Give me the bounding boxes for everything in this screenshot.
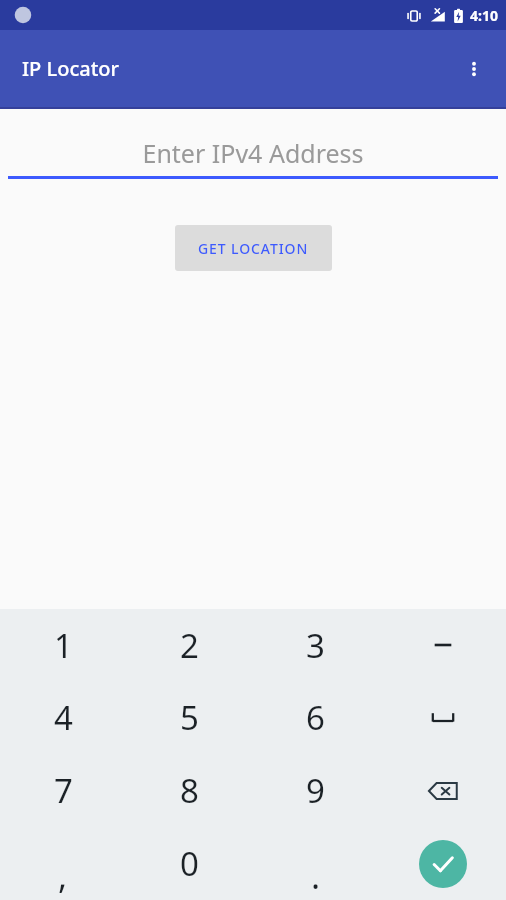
staticText: 6 [306, 695, 325, 740]
button[interactable]: . [252, 827, 379, 900]
staticText: 8 [180, 768, 199, 813]
staticText: 9 [306, 768, 325, 813]
staticText: 2 [180, 623, 199, 668]
staticText: GET LOCATION [198, 239, 309, 258]
button[interactable]: Done [379, 827, 506, 900]
button[interactable]: Space [379, 681, 506, 754]
staticText: 7 [54, 768, 73, 813]
staticText: . [311, 853, 321, 899]
button[interactable]: 7 [0, 754, 126, 827]
button[interactable]: More options [450, 45, 498, 93]
button[interactable]: 2 [126, 609, 252, 681]
button[interactable]: 3 [252, 609, 379, 681]
button[interactable]: 9 [252, 754, 379, 827]
button[interactable]: GET LOCATION [175, 225, 332, 271]
staticText: , [58, 853, 68, 899]
button[interactable]: 1 [0, 609, 126, 681]
staticText: 3 [306, 623, 325, 668]
staticText: IP Locator [22, 55, 119, 82]
staticText: 4 [54, 695, 73, 740]
button[interactable]: Backspace [379, 754, 506, 827]
staticText: 1 [54, 623, 73, 668]
button[interactable]: 4 [0, 681, 126, 754]
button[interactable]: 0 [126, 827, 252, 900]
staticText: 0 [180, 841, 199, 886]
button[interactable]: Enter IPv4 Address [8, 130, 498, 176]
button[interactable]: 8 [126, 754, 252, 827]
button[interactable]: 5 [126, 681, 252, 754]
button[interactable]: , [0, 827, 126, 900]
staticText: 5 [180, 695, 199, 740]
button[interactable]: Dash [379, 609, 506, 681]
staticText: 4:10 [470, 6, 498, 25]
button[interactable]: 6 [252, 681, 379, 754]
staticText: Enter IPv4 Address [142, 136, 364, 170]
